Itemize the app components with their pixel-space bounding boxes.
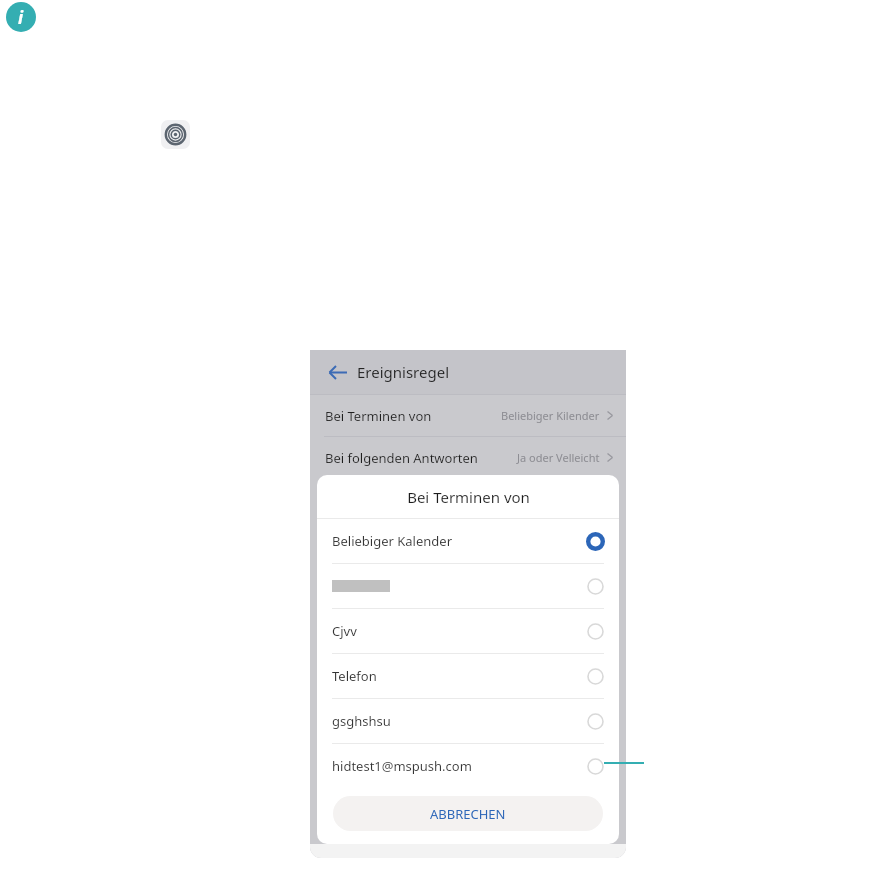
staticText: Telefon	[332, 667, 377, 685]
staticText: Beliebiger Kalender	[332, 532, 453, 550]
button[interactable]	[332, 564, 604, 608]
staticText: Bei Terminen von	[407, 487, 530, 507]
staticText: ABBRECHEN	[430, 805, 506, 823]
button[interactable]: gsghshsu	[332, 699, 604, 743]
staticText: Bei folgenden Antworten	[325, 449, 478, 467]
staticText: Beliebiger Kilender	[501, 408, 600, 423]
staticText: hidtest1@mspush.com	[332, 757, 472, 775]
button[interactable]: Back	[310, 350, 626, 394]
staticText: gsghshsu	[332, 712, 391, 730]
button[interactable]: Back	[324, 359, 350, 385]
button[interactable]: Information	[6, 2, 36, 32]
button[interactable]: Cjvv	[332, 609, 604, 653]
button[interactable]: Settings	[161, 120, 190, 149]
staticText: Ereignisregel	[357, 362, 450, 382]
staticText: Ja oder Velleicht	[517, 450, 600, 465]
button[interactable]: Bei Terminen von	[325, 395, 616, 436]
button[interactable]: Telefon	[332, 654, 604, 698]
staticText: Bei Terminen von	[325, 407, 432, 425]
button[interactable]: ABBRECHEN	[333, 796, 603, 831]
staticText: i	[18, 6, 24, 29]
button[interactable]: hidtest1@mspush.com	[332, 744, 604, 788]
staticText: Cjvv	[332, 622, 357, 640]
button[interactable]: Bei folgenden Antworten	[325, 437, 616, 478]
button[interactable]: Beliebiger Kalender	[332, 519, 604, 563]
